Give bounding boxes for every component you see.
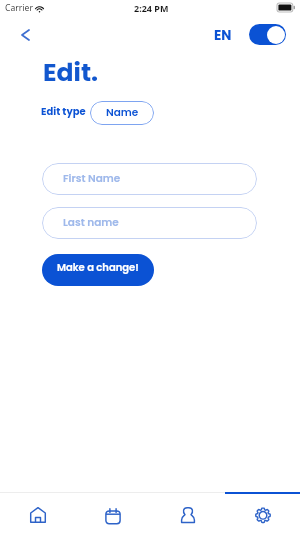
staticText: First Name <box>63 171 121 186</box>
button[interactable]: Profile <box>150 492 225 533</box>
button[interactable]: Make a change! <box>42 254 154 286</box>
staticText: Edit type <box>41 104 86 118</box>
staticText: Edit. <box>43 55 99 90</box>
button[interactable]: Name <box>90 101 154 125</box>
staticText: Last name <box>63 215 119 230</box>
staticText: Carrier <box>5 2 33 14</box>
staticText: Make a change! <box>57 260 139 274</box>
button[interactable]: Settings <box>225 492 300 533</box>
button[interactable]: Home <box>0 492 75 533</box>
button[interactable]: Language toggle <box>249 24 286 45</box>
button[interactable]: Calendar <box>75 492 150 533</box>
staticText: 2:24 PM <box>134 2 169 14</box>
button[interactable]: Last name <box>42 207 257 239</box>
button[interactable]: First Name <box>42 163 257 195</box>
button[interactable]: Back <box>13 23 37 47</box>
staticText: Name <box>106 105 139 120</box>
button[interactable]: EN <box>214 26 232 45</box>
